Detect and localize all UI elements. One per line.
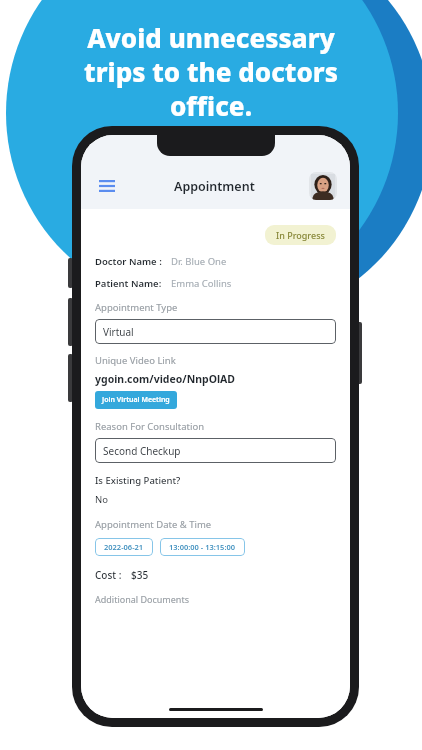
- button[interactable]: 2022-06-21: [95, 538, 153, 556]
- staticText: Unique Video Link: [95, 354, 176, 367]
- button[interactable]: 13:00:00 - 13:15:00: [160, 538, 245, 556]
- staticText: 13:00:00 - 13:15:00: [169, 542, 236, 552]
- staticText: ygoin.com/video/NnpOlAD: [95, 372, 236, 386]
- button[interactable]: Second Checkup: [95, 438, 336, 463]
- staticText: Dr. Blue One: [171, 255, 227, 268]
- staticText: Join Virtual Meeting: [102, 395, 170, 405]
- staticText: Virtual: [103, 325, 134, 339]
- staticText: Patient Name:: [95, 277, 162, 290]
- staticText: $35: [131, 568, 149, 582]
- button[interactable]: In Progress: [265, 225, 336, 245]
- staticText: No: [95, 493, 108, 506]
- button[interactable]: Virtual: [95, 319, 336, 344]
- staticText: Is Existing Patient?: [95, 474, 181, 487]
- button[interactable]: Join Virtual Meeting: [95, 391, 177, 409]
- staticText: Appointment Type: [95, 301, 178, 314]
- staticText: Reason For Consultation: [95, 420, 205, 433]
- button[interactable]: Menu: [94, 173, 120, 199]
- staticText: Second Checkup: [103, 444, 181, 458]
- staticText: Additional Documents: [95, 593, 189, 605]
- staticText: Appointment Date & Time: [95, 518, 212, 531]
- staticText: Cost :: [95, 568, 122, 582]
- button[interactable]: Profile: [309, 172, 337, 200]
- staticText: Doctor Name :: [95, 255, 162, 268]
- staticText: 2022-06-21: [104, 542, 144, 552]
- staticText: In Progress: [276, 229, 325, 241]
- staticText: Avoid unnecessary trips to the doctors o…: [84, 20, 338, 123]
- staticText: Emma Collins: [171, 277, 232, 290]
- staticText: Appointment: [174, 178, 255, 195]
